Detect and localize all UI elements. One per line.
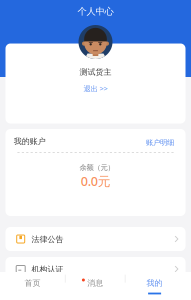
button[interactable]: 消息: [65, 272, 125, 300]
staticText: 法律公告: [31, 234, 63, 244]
staticText: 账户明细: [146, 138, 174, 147]
staticText: 首页: [25, 278, 41, 288]
staticText: 机构认证: [31, 264, 63, 274]
staticText: 消息: [87, 278, 103, 288]
staticText: 余额（元）: [79, 163, 114, 172]
button[interactable]: 法律公告: [5, 227, 185, 251]
staticText: 0.0元: [81, 172, 111, 190]
staticText: 我的: [147, 278, 163, 288]
staticText: 个人中心: [77, 5, 113, 17]
staticText: 我的账户: [14, 136, 46, 146]
button[interactable]: 首页: [3, 272, 63, 300]
button[interactable]: 账户明细: [144, 136, 176, 149]
staticText: 测试货主: [79, 67, 111, 77]
button[interactable]: 退出 >>: [80, 81, 110, 95]
staticText: 退出 >>: [83, 83, 107, 93]
button[interactable]: 我的: [125, 272, 185, 300]
button[interactable]: 机构认证: [5, 257, 185, 281]
